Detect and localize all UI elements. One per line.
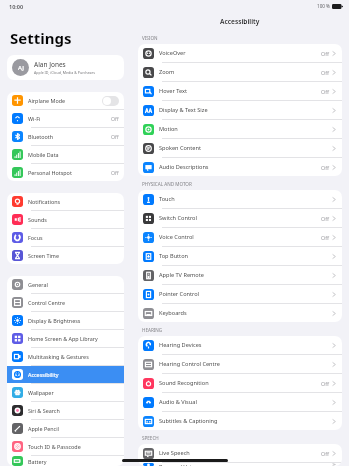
button[interactable]: Focus — [7, 229, 124, 246]
button[interactable]: Control Centre — [7, 294, 124, 311]
button[interactable]: Switch Control — [138, 209, 342, 227]
button[interactable]: Airplane Mode — [7, 92, 124, 109]
button[interactable]: Personal Hotspot — [7, 164, 124, 181]
staticText: Audio & Visual — [159, 398, 332, 406]
staticText: Apple ID, iCloud, Media & Purchases — [34, 70, 96, 75]
staticText: Off — [111, 133, 119, 140]
button[interactable]: Bluetooth — [7, 128, 124, 145]
button[interactable]: Apple TV Remote — [138, 266, 342, 284]
staticText: Touch — [159, 195, 332, 203]
button[interactable]: Spoken Content — [138, 139, 342, 157]
button[interactable]: Pointer Control — [138, 285, 342, 303]
button[interactable]: Touch — [138, 190, 342, 208]
staticText: Airplane Mode — [28, 97, 102, 104]
button[interactable]: Motion — [138, 120, 342, 138]
staticText: Display & Brightness — [28, 317, 119, 324]
staticText: Touch ID & Passcode — [28, 443, 119, 450]
staticText: Voice Control — [159, 233, 321, 241]
button[interactable]: Sounds — [7, 211, 124, 228]
button[interactable]: Voice Control — [138, 228, 342, 246]
staticText: Off — [321, 380, 329, 387]
button[interactable]: Personal Voice — [138, 463, 342, 466]
staticText: Hearing Control Centre — [159, 360, 332, 368]
staticText: Switch Control — [159, 214, 321, 222]
staticText: 10:00 — [9, 3, 24, 10]
button[interactable]: Mobile Data — [7, 146, 124, 163]
staticText: Off — [111, 169, 119, 176]
button[interactable]: Notifications — [7, 193, 124, 210]
button[interactable]: Wallpaper — [7, 384, 124, 401]
staticText: Sound Recognition — [159, 379, 321, 387]
button[interactable]: Battery — [7, 456, 124, 466]
staticText: Alan Jones — [34, 60, 66, 69]
staticText: Focus — [28, 234, 119, 241]
button[interactable]: Accessibility — [7, 366, 124, 383]
button[interactable]: Keyboards — [138, 304, 342, 322]
staticText: Off — [321, 50, 329, 57]
staticText: Accessibility — [220, 17, 260, 26]
staticText: Motion — [159, 125, 332, 133]
staticText: VoiceOver — [159, 49, 321, 57]
button[interactable]: VoiceOver — [138, 44, 342, 62]
staticText: Personal Hotspot — [28, 169, 111, 176]
button[interactable]: Apple Pencil — [7, 420, 124, 437]
button[interactable]: AJ — [7, 55, 124, 80]
staticText: VISION — [142, 35, 158, 41]
staticText: Off — [321, 69, 329, 76]
button[interactable]: Display & Brightness — [7, 312, 124, 329]
staticText: Audio Descriptions — [159, 163, 321, 171]
staticText: Screen Time — [28, 252, 119, 259]
staticText: Off — [321, 450, 329, 457]
staticText: Off — [321, 88, 329, 95]
staticText: 100 % — [317, 3, 330, 9]
staticText: Mobile Data — [28, 151, 119, 158]
staticText: Top Button — [159, 252, 332, 260]
staticText: Off — [111, 115, 119, 122]
button[interactable]: Subtitles & Captioning — [138, 412, 342, 430]
button[interactable]: Audio Descriptions — [138, 158, 342, 176]
staticText: PHYSICAL AND MOTOR — [142, 181, 192, 187]
staticText: Apple Pencil — [28, 425, 119, 432]
staticText: Display & Text Size — [159, 106, 332, 114]
staticText: Subtitles & Captioning — [159, 417, 332, 425]
button[interactable]: Siri & Search — [7, 402, 124, 419]
button[interactable]: Screen Time — [7, 247, 124, 264]
staticText: Control Centre — [28, 299, 119, 306]
button[interactable]: Audio & Visual — [138, 393, 342, 411]
button[interactable]: Touch ID & Passcode — [7, 438, 124, 455]
staticText: Personal Voice — [159, 463, 332, 466]
staticText: Bluetooth — [28, 133, 111, 140]
button[interactable]: Sound Recognition — [138, 374, 342, 392]
staticText: Off — [321, 164, 329, 171]
button[interactable]: Live Speech — [138, 444, 342, 462]
staticText: SPEECH — [142, 435, 159, 441]
staticText: Sounds — [28, 216, 119, 223]
staticText: Apple TV Remote — [159, 271, 332, 279]
staticText: Battery — [28, 458, 119, 465]
staticText: Wallpaper — [28, 389, 119, 396]
button[interactable]: Hover Text — [138, 82, 342, 100]
button[interactable]: Top Button — [138, 247, 342, 265]
staticText: General — [28, 281, 119, 288]
button[interactable]: Hearing Devices — [138, 336, 342, 354]
staticText: Pointer Control — [159, 290, 332, 298]
button[interactable]: Display & Text Size — [138, 101, 342, 119]
button[interactable] — [102, 96, 119, 106]
staticText: Hover Text — [159, 87, 321, 95]
button[interactable]: Zoom — [138, 63, 342, 81]
staticText: Off — [321, 215, 329, 222]
staticText: Wi-Fi — [28, 115, 111, 122]
button[interactable]: General — [7, 276, 124, 293]
button[interactable]: Home Screen & App Library — [7, 330, 124, 347]
staticText: Multitasking & Gestures — [28, 353, 119, 360]
button[interactable]: Wi-Fi — [7, 110, 124, 127]
staticText: Notifications — [28, 198, 119, 205]
staticText: Settings — [10, 28, 72, 48]
staticText: Siri & Search — [28, 407, 119, 414]
button[interactable]: Hearing Control Centre — [138, 355, 342, 373]
staticText: AJ — [18, 64, 24, 72]
staticText: Hearing Devices — [159, 341, 332, 349]
staticText: Off — [321, 234, 329, 241]
button[interactable]: Multitasking & Gestures — [7, 348, 124, 365]
staticText: Zoom — [159, 68, 321, 76]
